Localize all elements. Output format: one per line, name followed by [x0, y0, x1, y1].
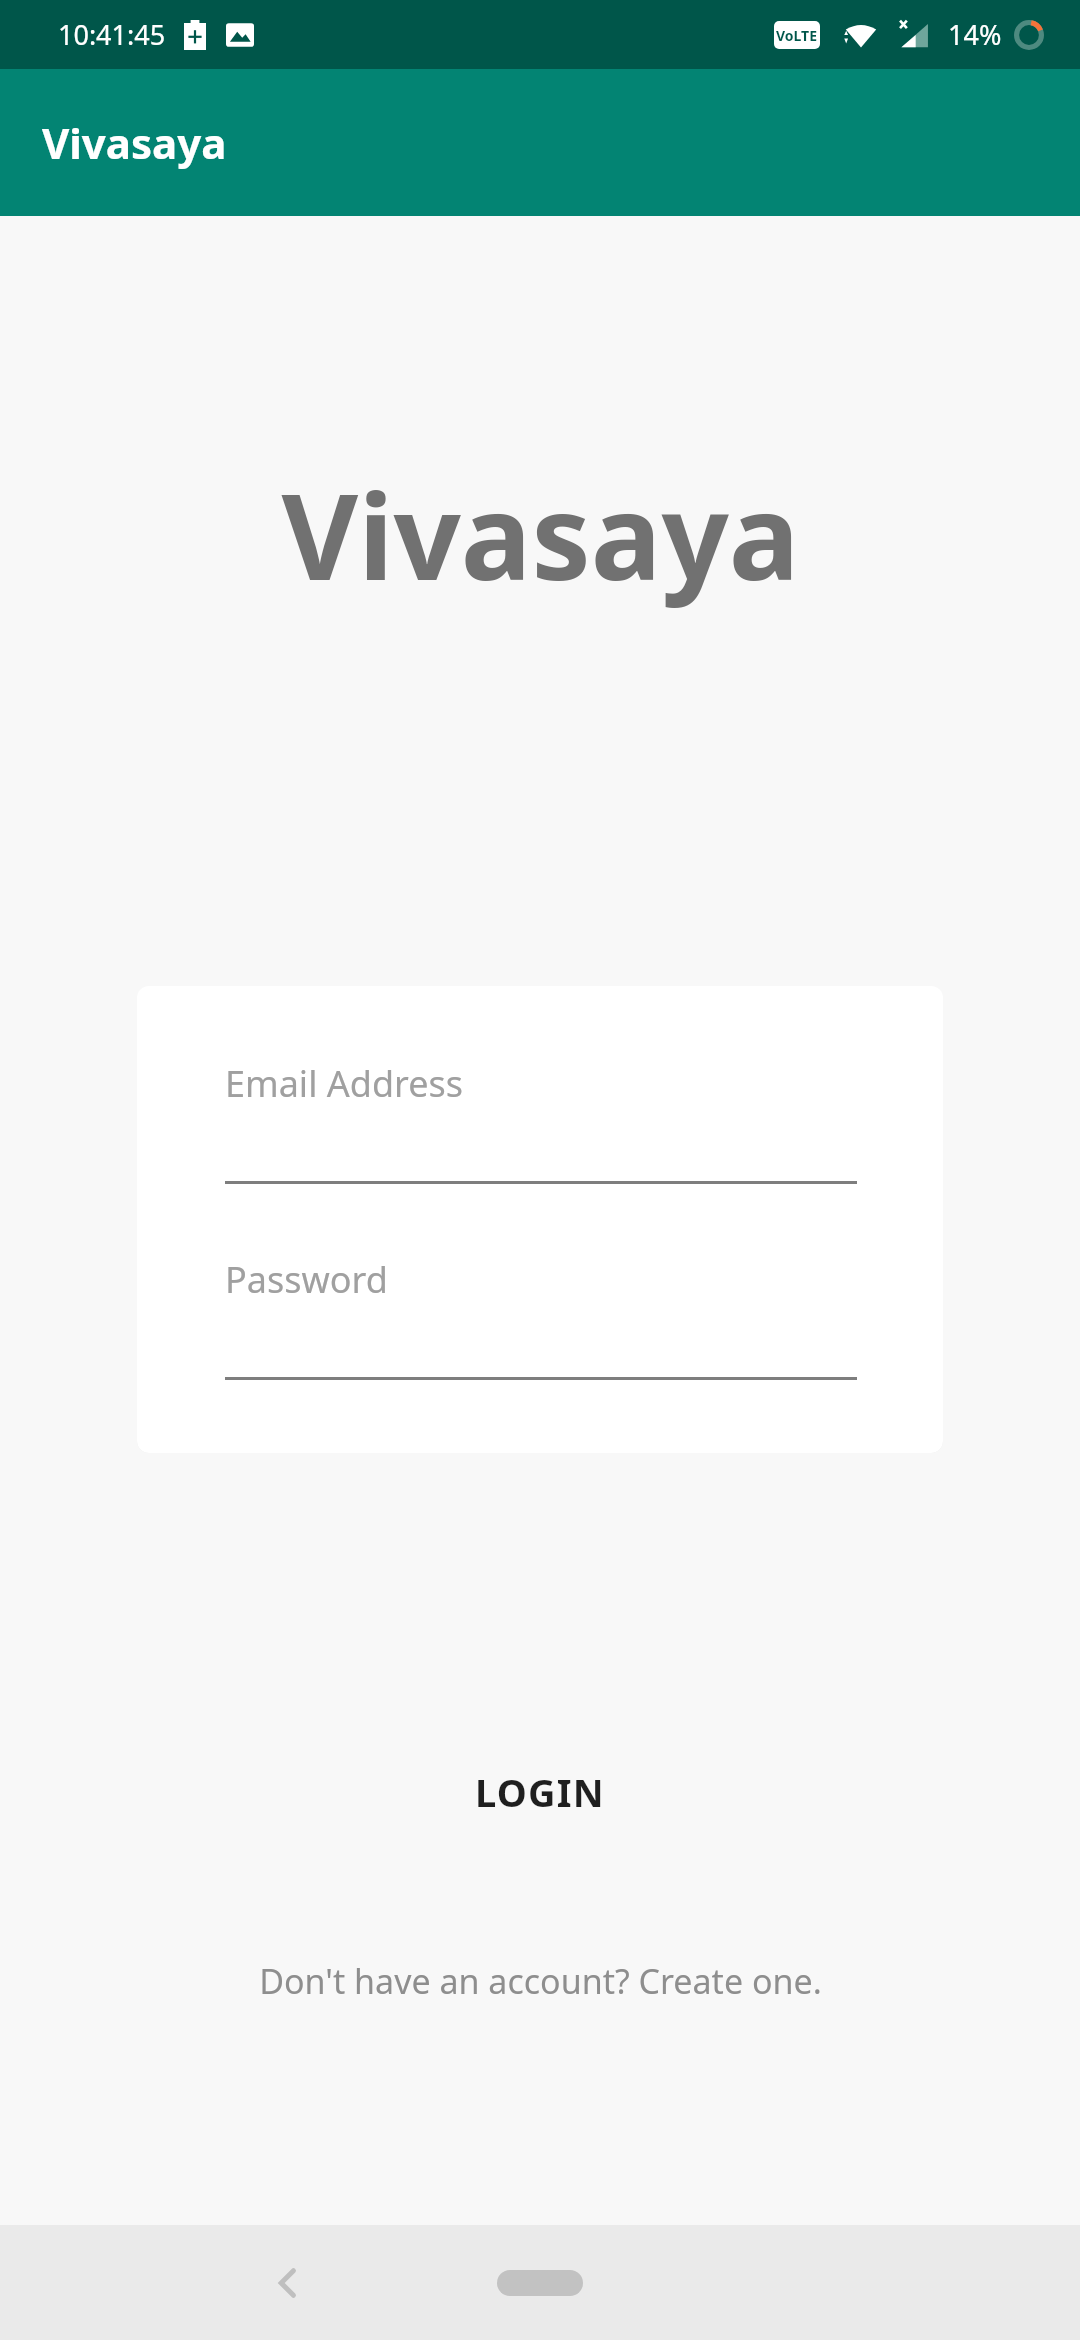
staticText: VoLTE [776, 26, 818, 45]
staticText: Password [225, 1255, 388, 1304]
staticText: Email Address [225, 1059, 464, 1108]
button[interactable]: Home [465, 2248, 615, 2318]
staticText: LOGIN [475, 1766, 605, 1818]
staticText: Vivasaya [42, 114, 227, 171]
button[interactable]: LOGIN [330, 1744, 750, 1840]
staticText: Vivasaya [281, 454, 800, 615]
button[interactable]: Don't have an account? Create one. [190, 1941, 890, 2021]
staticText: Don't have an account? Create one. [259, 1958, 822, 2004]
button[interactable]: Back [240, 2235, 336, 2331]
button[interactable]: Password [225, 1255, 857, 1380]
staticText: 10:41:45 [58, 16, 166, 53]
staticText: 14% [948, 16, 1002, 53]
button[interactable]: Email Address [225, 1059, 857, 1184]
